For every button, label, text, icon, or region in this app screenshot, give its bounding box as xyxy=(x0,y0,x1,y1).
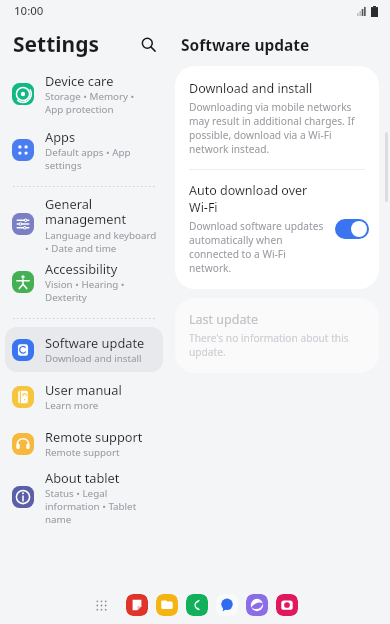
button[interactable]: User manual xyxy=(5,374,163,419)
button[interactable]: Last update xyxy=(175,298,379,373)
button[interactable]: Apps xyxy=(5,123,163,177)
staticText: Software update xyxy=(45,334,145,351)
staticText: Downloading via mobile networks may resu… xyxy=(189,100,365,156)
button[interactable]: Device care xyxy=(5,67,163,121)
staticText: Language and keyboard • Date and time xyxy=(45,229,157,253)
button[interactable]: Phone xyxy=(186,594,208,616)
button[interactable]: Internet xyxy=(246,594,268,616)
button[interactable]: Software update xyxy=(5,327,163,372)
staticText: Default apps • App settings xyxy=(45,146,131,172)
button[interactable]: General management xyxy=(5,195,163,253)
staticText: Auto download over Wi-Fi xyxy=(189,182,327,216)
staticText: Status • Legal information • Tablet name xyxy=(45,487,137,526)
staticText: Download software updates automatically … xyxy=(189,219,327,275)
staticText: 10:00 xyxy=(14,3,44,19)
staticText: Remote support xyxy=(45,446,120,459)
button[interactable]: Search xyxy=(128,24,168,64)
staticText: Download and install xyxy=(45,352,142,365)
staticText: Download and install xyxy=(189,80,313,97)
button[interactable]: All apps xyxy=(89,593,113,617)
button[interactable]: About tablet xyxy=(5,468,163,526)
staticText: Apps xyxy=(45,128,76,145)
button[interactable]: Accessibility xyxy=(5,255,163,309)
staticText: About tablet xyxy=(45,469,120,486)
staticText: Storage • Memory • App protection xyxy=(45,90,135,116)
button[interactable]: Camera xyxy=(276,594,298,616)
staticText: Learn more xyxy=(45,399,99,412)
staticText: User manual xyxy=(45,381,122,398)
staticText: Vision • Hearing • Dexterity xyxy=(45,278,125,304)
staticText: Settings xyxy=(13,30,100,59)
staticText: Device care xyxy=(45,72,114,89)
button[interactable]: Messages xyxy=(216,594,238,616)
staticText: Remote support xyxy=(45,428,143,445)
button[interactable] xyxy=(335,219,369,239)
button[interactable]: Auto download over Wi-Fi xyxy=(175,170,379,289)
button[interactable]: My Files xyxy=(156,594,178,616)
button[interactable]: Download and install xyxy=(175,66,379,169)
staticText: Last update xyxy=(189,311,258,328)
button[interactable]: Remote support xyxy=(5,421,163,466)
staticText: Software update xyxy=(181,34,310,55)
staticText: General management xyxy=(45,195,127,228)
button[interactable]: Notes xyxy=(126,594,148,616)
staticText: Accessibility xyxy=(45,260,118,277)
staticText: There's no information about this update… xyxy=(189,331,365,359)
